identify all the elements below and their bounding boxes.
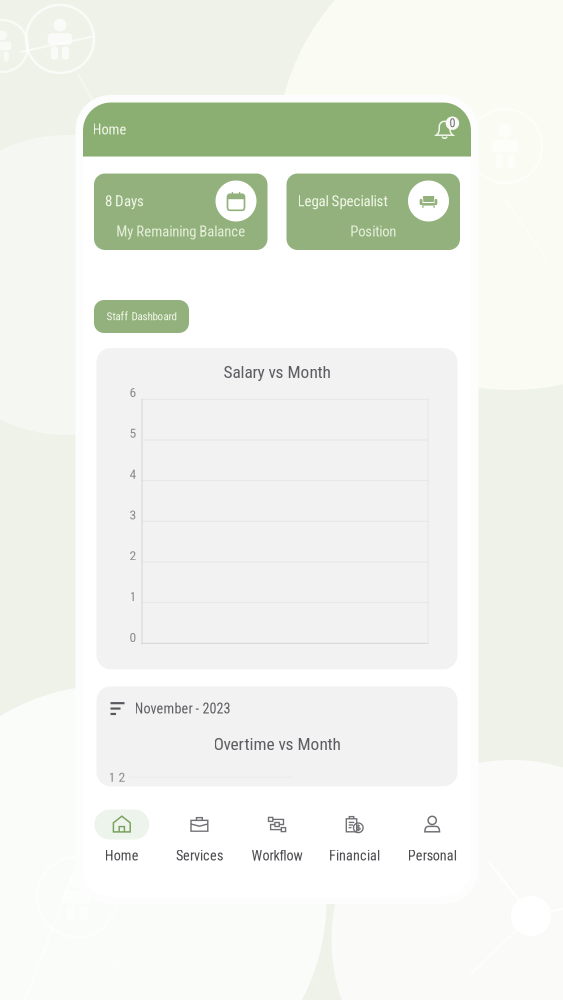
staticText: Services bbox=[176, 847, 223, 864]
staticText: Overtime vs Month bbox=[213, 734, 340, 754]
button[interactable]: Legal Specialist bbox=[286, 173, 460, 250]
button[interactable]: Workflow bbox=[238, 797, 316, 896]
staticText: Home bbox=[92, 121, 126, 138]
staticText: 1 bbox=[129, 588, 136, 604]
staticText: Financial bbox=[329, 847, 380, 864]
staticText: Salary vs Month bbox=[223, 362, 330, 382]
button[interactable]: Financial bbox=[316, 797, 393, 896]
button[interactable]: Staff Dashboard bbox=[94, 300, 189, 333]
button[interactable]: Notifications bbox=[430, 115, 460, 143]
button[interactable]: Home bbox=[83, 797, 161, 896]
staticText: Staff Dashboard bbox=[106, 310, 176, 323]
button[interactable]: 8 Days bbox=[94, 173, 267, 250]
staticText: Workflow bbox=[251, 847, 302, 864]
staticText: Legal Specialist bbox=[297, 192, 387, 210]
button[interactable]: Personal bbox=[393, 797, 471, 896]
staticText: Home bbox=[105, 847, 139, 864]
staticText: 5 bbox=[129, 425, 136, 441]
staticText: 0 bbox=[449, 116, 455, 130]
staticText: 0 bbox=[129, 629, 136, 645]
button[interactable]: Services bbox=[161, 797, 238, 896]
staticText: 4 bbox=[129, 466, 136, 482]
staticText: 1 2 bbox=[108, 769, 125, 785]
staticText: November - 2023 bbox=[134, 700, 230, 717]
staticText: Personal bbox=[408, 847, 457, 864]
staticText: 8 Days bbox=[105, 192, 144, 210]
staticText: Position bbox=[350, 223, 396, 240]
staticText: My Remaining Balance bbox=[116, 223, 245, 240]
staticText: 2 bbox=[129, 548, 136, 564]
staticText: 6 bbox=[129, 384, 136, 400]
staticText: 3 bbox=[129, 507, 136, 523]
